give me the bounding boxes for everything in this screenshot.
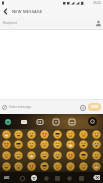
button[interactable]: [3, 117, 12, 126]
button[interactable]: [18, 174, 26, 182]
staticText: SEND: [91, 105, 98, 109]
button[interactable]: [87, 116, 98, 127]
staticText: Recipient: [3, 21, 17, 25]
button[interactable]: [90, 139, 103, 150]
button[interactable]: [0, 150, 12, 161]
button[interactable]: [51, 150, 64, 161]
button[interactable]: [30, 174, 38, 182]
button[interactable]: ABC: [0, 172, 14, 183]
button[interactable]: [25, 150, 38, 161]
staticText: ABC: [4, 176, 10, 180]
button[interactable]: [53, 174, 61, 182]
button[interactable]: [12, 129, 25, 139]
button[interactable]: [12, 161, 25, 172]
button[interactable]: [38, 161, 51, 172]
button[interactable]: [38, 129, 51, 139]
button[interactable]: [90, 129, 103, 139]
button[interactable]: [0, 161, 12, 172]
button[interactable]: [64, 161, 77, 172]
button[interactable]: [51, 129, 64, 139]
button[interactable]: Enter message: [9, 100, 78, 114]
button[interactable]: SEND: [88, 103, 101, 111]
button[interactable]: [78, 103, 87, 112]
button[interactable]: [77, 150, 90, 161]
button[interactable]: [89, 172, 103, 183]
button[interactable]: [12, 150, 25, 161]
button[interactable]: [38, 150, 51, 161]
button[interactable]: [25, 139, 38, 150]
button[interactable]: [64, 129, 77, 139]
button[interactable]: [77, 129, 90, 139]
button[interactable]: [77, 174, 85, 182]
button[interactable]: [90, 150, 103, 161]
button[interactable]: [77, 139, 90, 150]
button[interactable]: [0, 129, 12, 139]
button[interactable]: [25, 129, 38, 139]
button[interactable]: [12, 139, 25, 150]
button[interactable]: [38, 139, 51, 150]
button[interactable]: Recipient: [0, 17, 103, 29]
button[interactable]: [25, 161, 38, 172]
button[interactable]: [64, 150, 77, 161]
button[interactable]: [0, 6, 11, 17]
button[interactable]: [42, 174, 50, 182]
button[interactable]: [19, 117, 28, 126]
button[interactable]: [51, 139, 64, 150]
button[interactable]: [67, 117, 76, 126]
button[interactable]: [65, 174, 73, 182]
staticText: 23:22: [93, 1, 101, 5]
staticText: NEW MESSAGE: [12, 9, 43, 14]
button[interactable]: [51, 161, 64, 172]
button[interactable]: [64, 139, 77, 150]
button[interactable]: [0, 139, 12, 150]
button[interactable]: [0, 103, 9, 112]
button[interactable]: [51, 117, 60, 126]
staticText: Enter message: [9, 105, 32, 109]
button[interactable]: [93, 18, 103, 28]
button[interactable]: [90, 161, 103, 172]
button[interactable]: [77, 161, 90, 172]
button[interactable]: [35, 117, 44, 126]
